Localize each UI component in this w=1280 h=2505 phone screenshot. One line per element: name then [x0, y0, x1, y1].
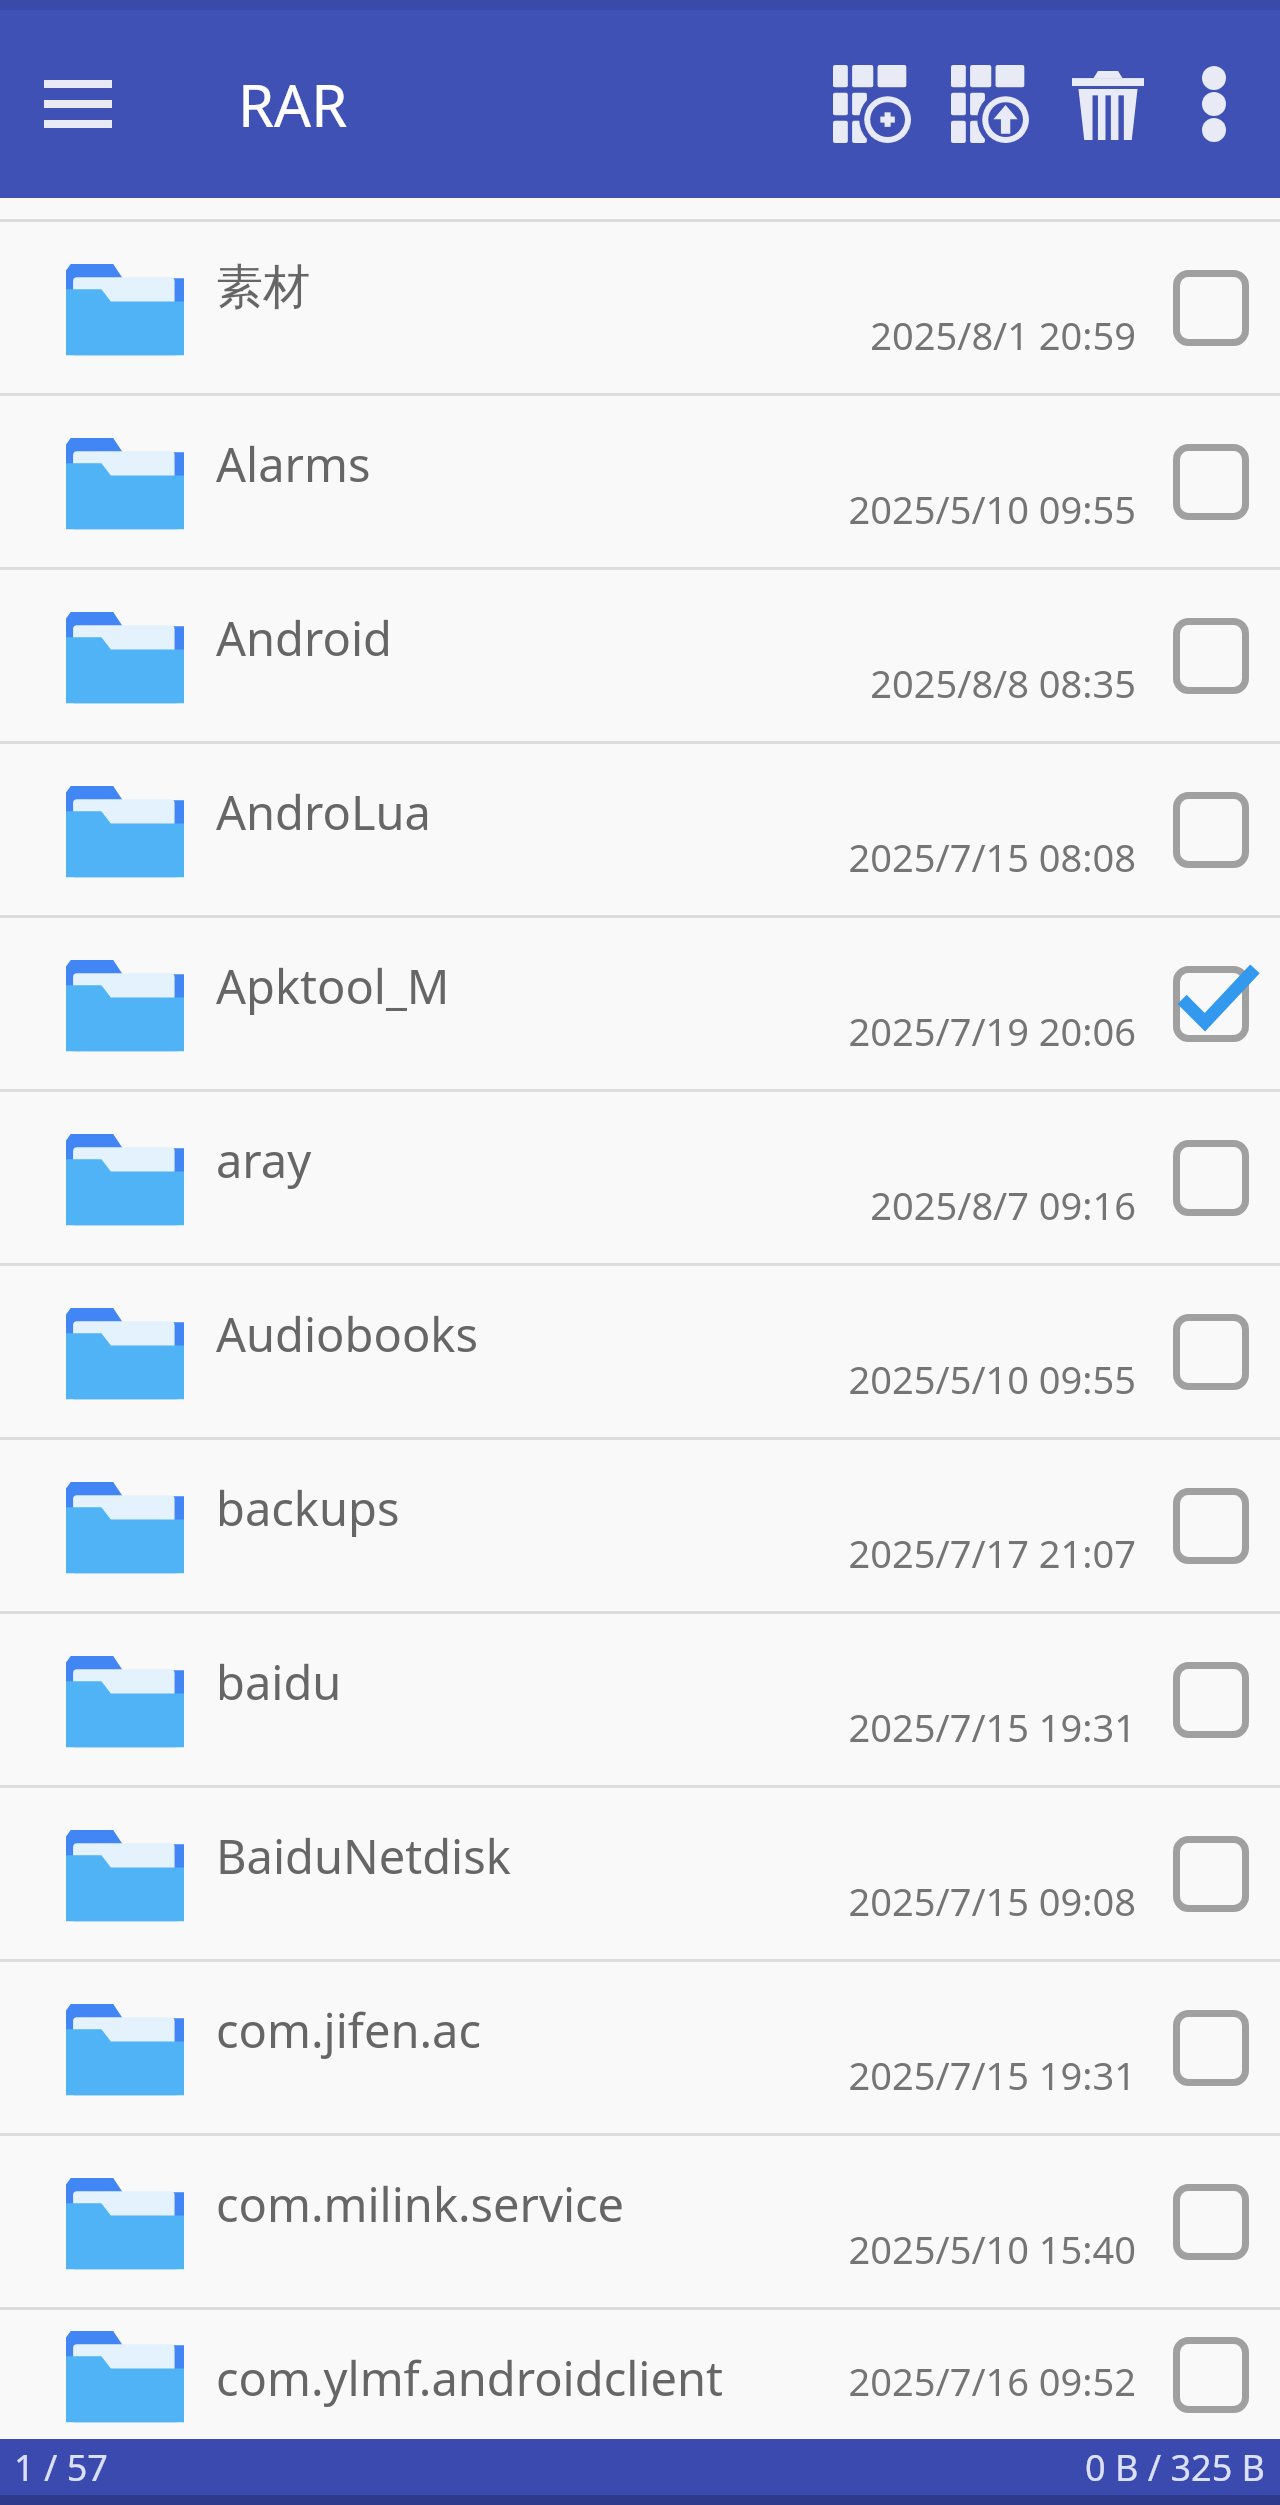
staticText: com.milink.service [216, 2172, 625, 2236]
button[interactable]: 素材 [0, 222, 1280, 396]
button[interactable]: Select Android [1170, 615, 1252, 697]
button[interactable]: Open navigation menu [30, 56, 126, 152]
staticText: 2025/8/7 09:16 [870, 1179, 1136, 1231]
staticText: Audiobooks [216, 1302, 478, 1366]
button[interactable]: Select com.jifen.ac [1170, 2007, 1252, 2089]
button[interactable]: Selected Apktool_M [1170, 963, 1252, 1045]
button[interactable]: Select BaiduNetdisk [1170, 1833, 1252, 1915]
button[interactable]: Select baidu [1170, 1659, 1252, 1741]
staticText: com.jifen.ac [216, 1998, 482, 2062]
staticText: Alarms [216, 432, 371, 496]
button[interactable]: Add to archive [820, 52, 924, 156]
staticText: 2025/5/10 09:55 [848, 483, 1136, 535]
staticText: 素材 [216, 258, 310, 317]
button[interactable]: Apktool_M [0, 918, 1280, 1092]
staticText: backups [216, 1476, 400, 1540]
button[interactable]: baidu [0, 1614, 1280, 1788]
staticText: 2025/7/15 08:08 [848, 831, 1136, 883]
button[interactable]: Select 素材 [1170, 267, 1252, 349]
staticText: 2025/7/17 21:07 [848, 1527, 1136, 1579]
button[interactable]: AndroLua [0, 744, 1280, 918]
staticText: 2025/7/15 09:08 [848, 1875, 1136, 1927]
button[interactable]: BaiduNetdisk [0, 1788, 1280, 1962]
staticText: 2025/5/10 09:55 [848, 1353, 1136, 1405]
staticText: aray [216, 1128, 312, 1192]
staticText: 0 B / 325 B [1085, 2443, 1266, 2492]
staticText: 2025/7/19 20:06 [848, 1005, 1136, 1057]
button[interactable]: Select aray [1170, 1137, 1252, 1219]
button[interactable]: Select AndroLua [1170, 789, 1252, 871]
button[interactable]: Select com.milink.service [1170, 2181, 1252, 2263]
staticText: 2025/8/1 20:59 [870, 309, 1136, 361]
button[interactable]: Select Alarms [1170, 441, 1252, 523]
staticText: 2025/7/16 09:52 [848, 2355, 1136, 2407]
button[interactable]: Extract archive [938, 52, 1042, 156]
button[interactable]: Audiobooks [0, 1266, 1280, 1440]
staticText: 1 / 57 [14, 2443, 108, 2492]
staticText: Android [216, 606, 392, 670]
button[interactable]: Select backups [1170, 1485, 1252, 1567]
button[interactable]: Alarms [0, 396, 1280, 570]
staticText: baidu [216, 1650, 342, 1714]
staticText: RAR [238, 65, 348, 144]
staticText: 2025/7/15 19:31 [848, 1701, 1136, 1753]
button[interactable]: Select Audiobooks [1170, 1311, 1252, 1393]
button[interactable]: Android [0, 570, 1280, 744]
button[interactable]: aray [0, 1092, 1280, 1266]
staticText: 2025/8/8 08:35 [870, 657, 1136, 709]
staticText: Apktool_M [216, 954, 450, 1018]
staticText: 2025/5/10 15:40 [848, 2223, 1136, 2275]
button[interactable]: Select com.ylmf.androidclient [1170, 2334, 1252, 2416]
button[interactable]: Delete [1056, 52, 1160, 156]
staticText: AndroLua [216, 780, 431, 844]
staticText: BaiduNetdisk [216, 1824, 511, 1888]
button[interactable]: More options [1162, 52, 1266, 156]
button[interactable]: backups [0, 1440, 1280, 1614]
button[interactable]: com.jifen.ac [0, 1962, 1280, 2136]
button[interactable]: com.milink.service [0, 2136, 1280, 2310]
button[interactable]: com.ylmf.androidclient [0, 2310, 1280, 2439]
staticText: com.ylmf.androidclient [216, 2346, 723, 2410]
staticText: 2025/7/15 19:31 [848, 2049, 1136, 2101]
